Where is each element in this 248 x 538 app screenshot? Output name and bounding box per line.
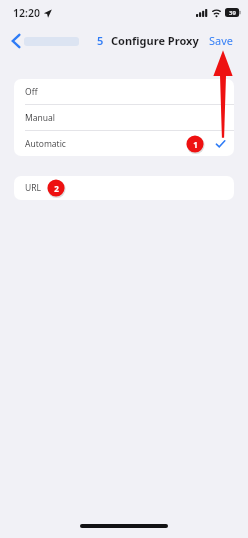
staticText: 12:20 bbox=[13, 6, 40, 20]
staticText: Off bbox=[25, 86, 38, 98]
button[interactable]: Off bbox=[14, 79, 234, 104]
staticText: Configure Proxy bbox=[111, 33, 199, 48]
staticText: Automatic bbox=[25, 138, 66, 150]
staticText: URL bbox=[25, 182, 41, 194]
staticText: 1 bbox=[193, 139, 198, 150]
staticText: 5 bbox=[97, 33, 104, 48]
staticText: 39 bbox=[229, 9, 236, 17]
staticText: Save bbox=[209, 33, 234, 48]
button[interactable]: Automatic bbox=[14, 131, 234, 156]
staticText: 2 bbox=[54, 183, 59, 194]
button[interactable]: Back bbox=[8, 32, 83, 50]
button[interactable]: URL bbox=[14, 176, 234, 200]
button[interactable]: Save bbox=[206, 29, 237, 52]
staticText: Manual bbox=[25, 112, 55, 124]
button[interactable]: Manual bbox=[14, 105, 234, 130]
